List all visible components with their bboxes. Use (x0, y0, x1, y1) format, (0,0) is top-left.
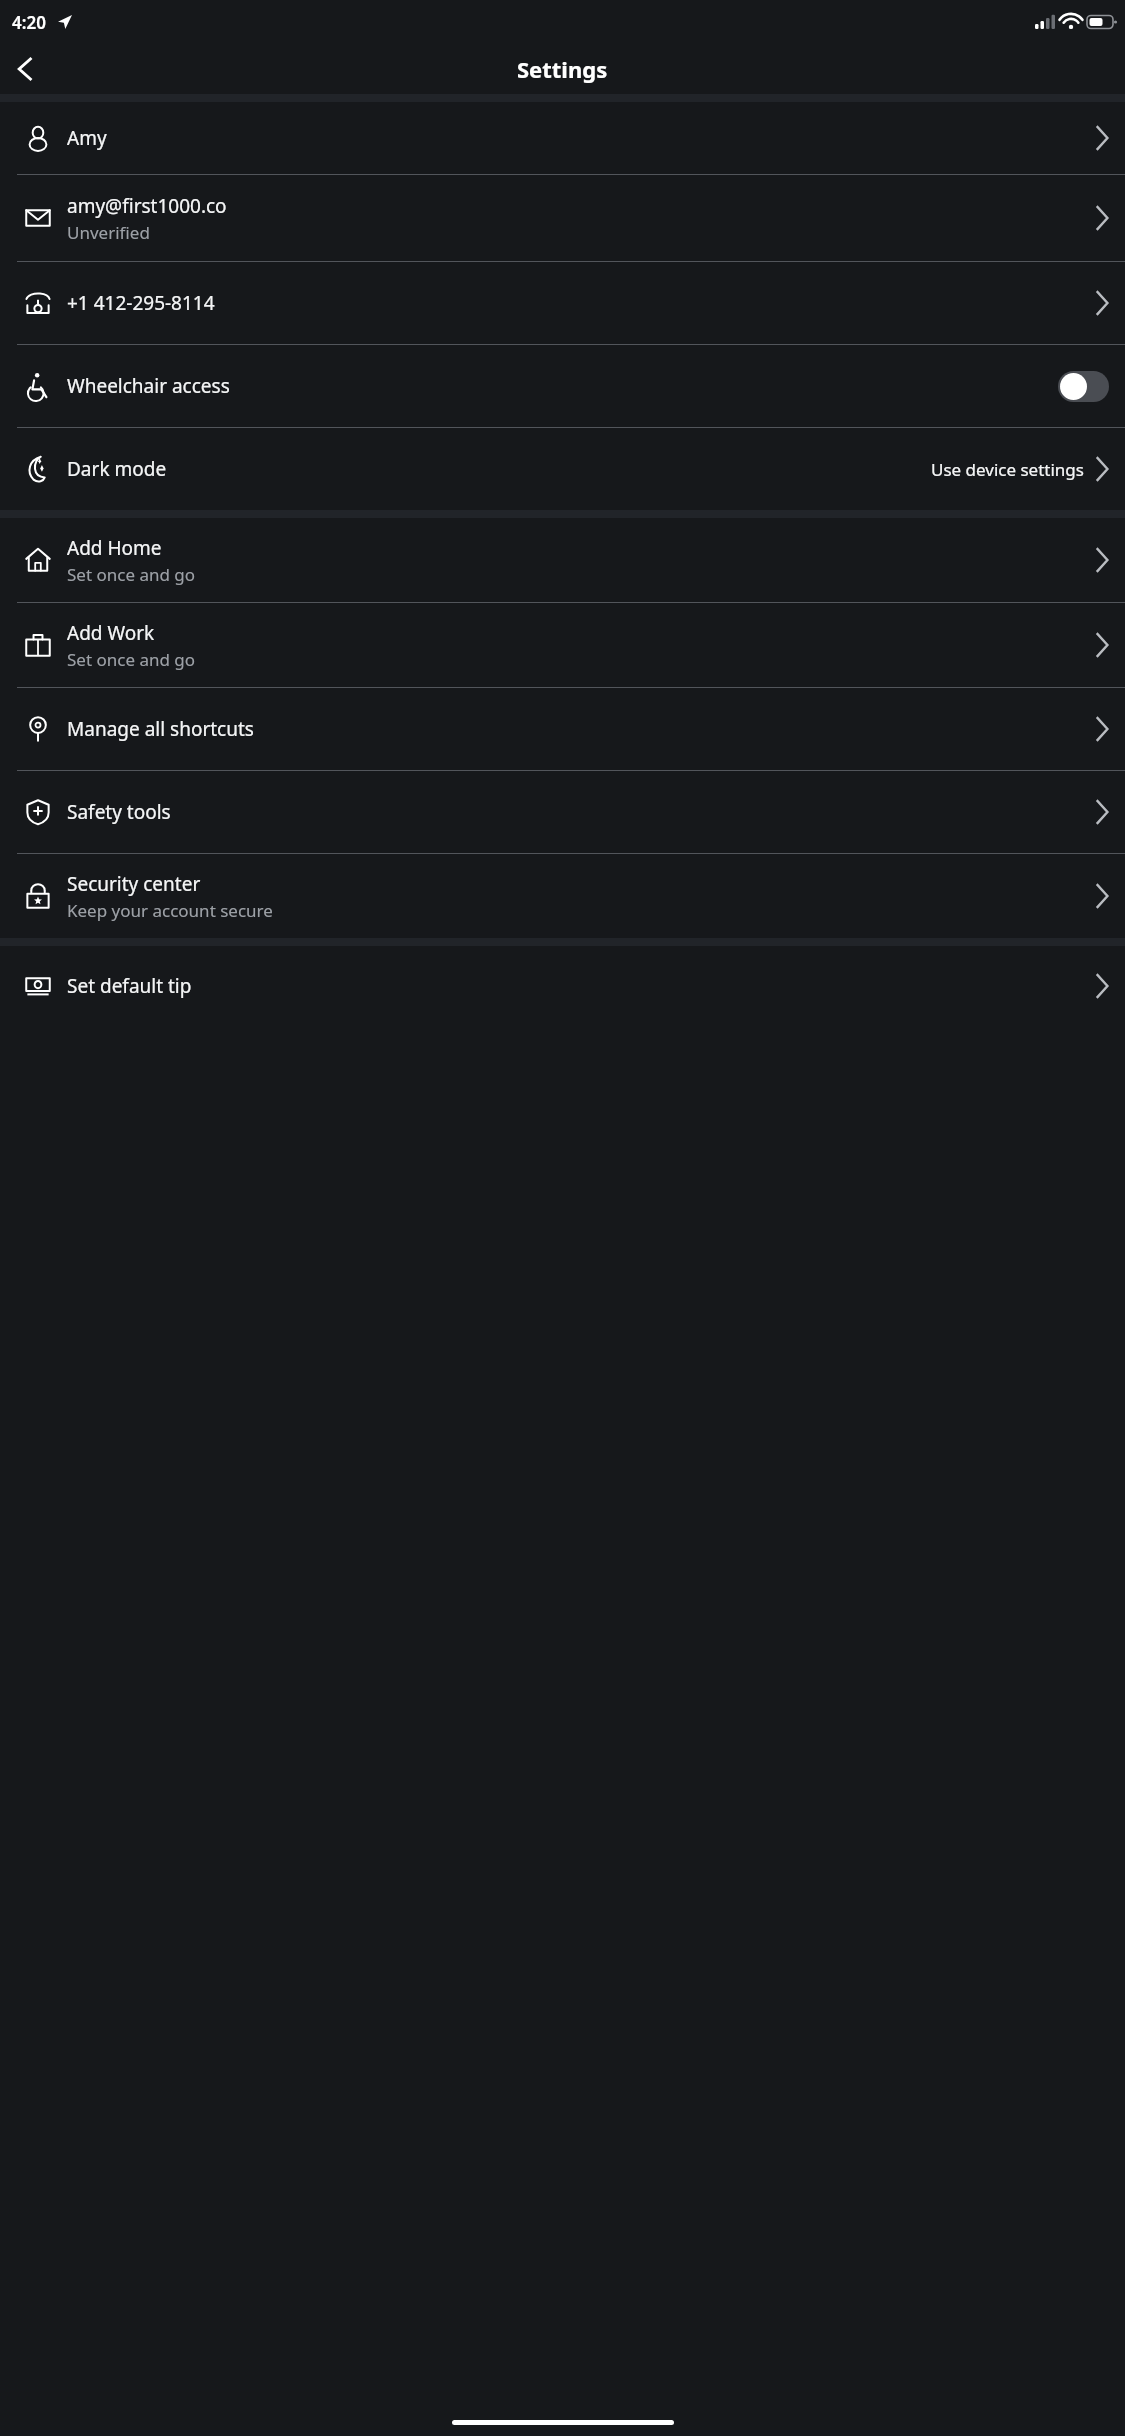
button[interactable]: +1 412-295-8114 (0, 262, 1125, 344)
staticText: Unverified (67, 221, 150, 244)
button[interactable]: Amy (0, 102, 1125, 174)
staticText: +1 412-295-8114 (67, 290, 215, 316)
staticText: Set once and go (67, 563, 196, 586)
button[interactable]: Add Work (0, 603, 1125, 687)
staticText: Set once and go (67, 648, 196, 671)
staticText: Security center (67, 871, 201, 897)
button[interactable]: Back (0, 44, 52, 94)
staticText: Safety tools (67, 799, 171, 825)
button[interactable]: Security center (0, 854, 1125, 938)
button[interactable]: Wheelchair access toggle (1058, 371, 1109, 402)
staticText: Settings (517, 54, 608, 84)
staticText: Amy (67, 125, 107, 151)
staticText: Manage all shortcuts (67, 716, 254, 742)
staticText: Set default tip (67, 973, 192, 999)
button[interactable]: Manage all shortcuts (0, 688, 1125, 770)
staticText: Add Work (67, 620, 155, 646)
button[interactable]: amy@first1000.co (0, 175, 1125, 261)
staticText: Use device settings (931, 458, 1084, 481)
button[interactable]: Add Home (0, 518, 1125, 602)
button[interactable]: Dark mode (0, 428, 1125, 510)
staticText: Keep your account secure (67, 899, 273, 922)
staticText: Add Home (67, 535, 162, 561)
staticText: amy@first1000.co (67, 193, 227, 219)
staticText: 4:20 (12, 11, 46, 34)
button[interactable]: Wheelchair access (0, 345, 1125, 427)
staticText: Wheelchair access (67, 373, 230, 399)
staticText: Dark mode (67, 456, 167, 482)
button[interactable]: Set default tip (0, 946, 1125, 1026)
button[interactable]: Safety tools (0, 771, 1125, 853)
